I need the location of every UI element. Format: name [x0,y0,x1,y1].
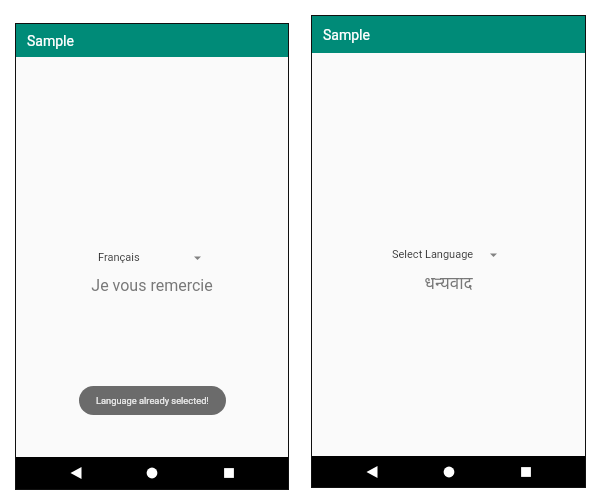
button[interactable]: Back [16,457,135,489]
button[interactable]: Sample [16,24,288,57]
staticText: Language already selected! [96,395,209,406]
staticText: Français [98,251,140,264]
button[interactable]: Recent apps [169,457,288,489]
button[interactable]: Back [312,456,431,487]
button[interactable]: Language already selected! [79,386,226,415]
button[interactable]: Recent apps [466,456,585,487]
staticText: Je vous remercie [91,276,213,295]
button[interactable]: Home [431,456,466,487]
staticText: Select Language [392,248,474,261]
button[interactable]: Home [135,457,169,489]
button[interactable]: Sample [312,16,585,53]
button[interactable]: Français [98,251,201,264]
staticText: धन्यवाद [424,271,473,294]
staticText: Sample [323,27,370,43]
button[interactable]: Select Language [392,248,497,261]
staticText: Sample [27,33,74,49]
